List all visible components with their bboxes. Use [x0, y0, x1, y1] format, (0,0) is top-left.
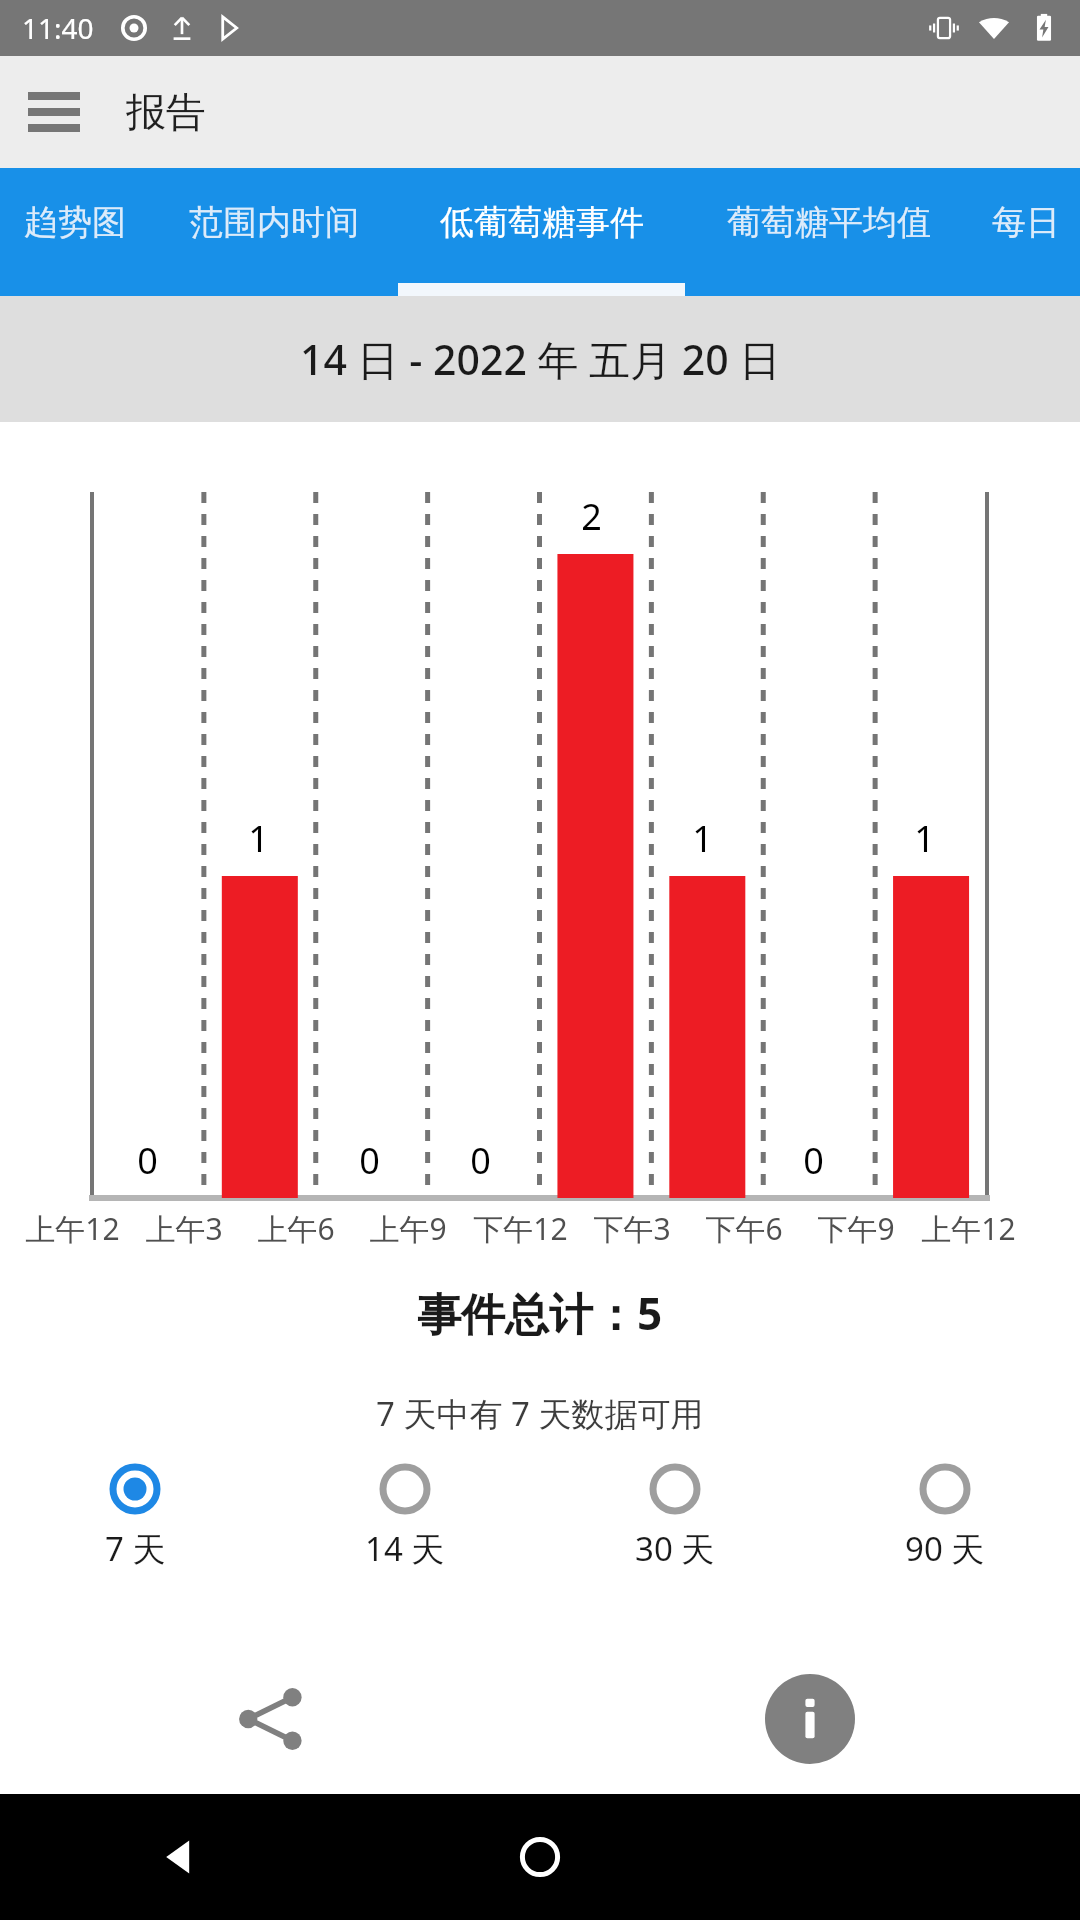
staticText: 1: [692, 814, 713, 863]
button[interactable]: 14 天: [270, 1460, 540, 1575]
staticText: 报告: [126, 87, 206, 137]
staticText: 1: [248, 814, 269, 863]
button[interactable]: 每日: [972, 168, 1080, 296]
staticText: 低葡萄糖事件: [440, 201, 644, 244]
staticText: 上午12: [25, 1208, 120, 1249]
staticText: 上午3: [145, 1208, 223, 1249]
staticText: 11:40: [22, 9, 94, 47]
staticText: 0: [470, 1136, 491, 1185]
staticText: 7 天中有 7 天数据可用: [376, 1391, 704, 1436]
button[interactable]: 趋势图: [0, 168, 150, 296]
staticText: 14 天: [365, 1526, 445, 1571]
staticText: 趋势图: [24, 201, 126, 244]
staticText: 30 天: [635, 1526, 715, 1571]
staticText: 0: [803, 1136, 824, 1185]
button[interactable]: Open navigation menu: [16, 74, 92, 150]
button[interactable]: 范围内时间: [150, 168, 398, 296]
staticText: 下午6: [705, 1208, 783, 1249]
button[interactable]: Information: [765, 1674, 855, 1764]
button[interactable]: 30 天: [540, 1460, 810, 1575]
button[interactable]: 葡萄糖平均值: [685, 168, 972, 296]
staticText: 范围内时间: [189, 201, 359, 244]
staticText: 下午3: [593, 1208, 671, 1249]
staticText: 葡萄糖平均值: [727, 201, 931, 244]
staticText: 下午9: [817, 1208, 895, 1249]
button[interactable]: Share: [222, 1671, 318, 1767]
staticText: 上午6: [257, 1208, 335, 1249]
staticText: 1: [914, 814, 935, 863]
staticText: 下午12: [473, 1208, 568, 1249]
staticText: 上午12: [921, 1208, 1016, 1249]
button[interactable]: Home: [360, 1794, 720, 1920]
staticText: 0: [137, 1136, 158, 1185]
button[interactable]: 低葡萄糖事件: [398, 168, 685, 296]
staticText: 事件总计：5: [417, 1283, 663, 1343]
staticText: 14 日 - 2022 年 五月 20 日: [300, 331, 781, 387]
staticText: 上午9: [369, 1208, 447, 1249]
staticText: 0: [359, 1136, 380, 1185]
staticText: 2: [581, 492, 602, 541]
staticText: 7 天: [105, 1526, 166, 1571]
staticText: 90 天: [905, 1526, 985, 1571]
button[interactable]: 7 天: [0, 1460, 270, 1575]
button[interactable]: Back: [0, 1794, 360, 1920]
button[interactable]: 90 天: [810, 1460, 1080, 1575]
staticText: 每日: [992, 201, 1060, 244]
